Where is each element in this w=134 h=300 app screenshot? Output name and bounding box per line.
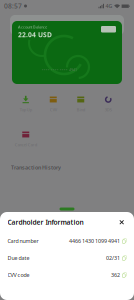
staticText: 08:57	[4, 2, 22, 10]
staticText: Bind	[77, 107, 85, 112]
staticText: Transaction History	[11, 164, 61, 171]
staticText: 4466 1430 1099 4941	[69, 237, 120, 245]
staticText: Top Up	[20, 107, 32, 112]
staticText: CVV	[50, 107, 57, 112]
staticText: Due date	[7, 254, 29, 262]
staticText: 362	[111, 271, 120, 279]
button[interactable]: Copy CVV code	[120, 273, 126, 277]
button[interactable]: Bind	[67, 95, 94, 112]
staticText: 4G	[106, 2, 113, 10]
button[interactable]: Cancel Card	[6, 130, 45, 147]
staticText: 02/31	[106, 254, 120, 262]
staticText: CVV code	[7, 271, 29, 279]
staticText: Cardholder Information	[7, 218, 83, 227]
button[interactable]: Top Up	[12, 95, 39, 112]
staticText: •••• •••• •••• 4941	[42, 67, 77, 72]
staticText: 22.04 USD	[18, 30, 52, 39]
button[interactable]: CVV	[39, 95, 67, 112]
button[interactable]: Copy Card number	[120, 239, 126, 243]
button[interactable]: Close	[117, 217, 126, 227]
button[interactable]: 3DS	[94, 95, 122, 112]
staticText: Cancel Card	[15, 142, 37, 147]
staticText: Account Balance	[18, 24, 47, 29]
button[interactable]: Copy Due date	[120, 256, 126, 260]
staticText: 3DS	[105, 107, 112, 112]
staticText: Card number	[7, 237, 38, 245]
